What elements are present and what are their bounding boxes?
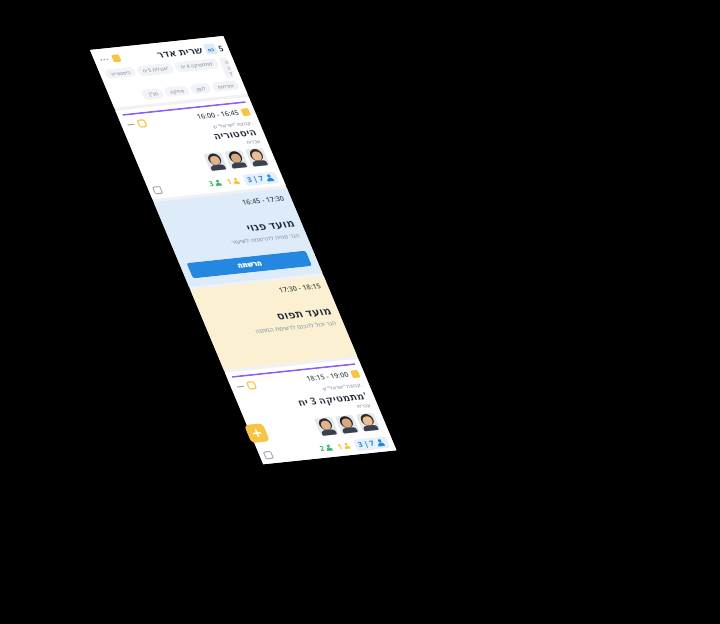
button[interactable]: אזרחות xyxy=(103,45,129,55)
staticText: לשון xyxy=(86,47,96,53)
button[interactable]: More options xyxy=(0,63,134,155)
staticText: היסטוריה xyxy=(7,93,127,105)
button[interactable]: לשון xyxy=(81,45,101,55)
button[interactable]: 3 | 7 xyxy=(96,140,129,152)
staticText: קבוצת "ישראל" ש. xyxy=(7,86,127,93)
staticText: עברית xyxy=(7,105,127,111)
staticText: אזרחות xyxy=(108,47,124,53)
staticText: 16:00 - 16:45 xyxy=(76,73,118,83)
